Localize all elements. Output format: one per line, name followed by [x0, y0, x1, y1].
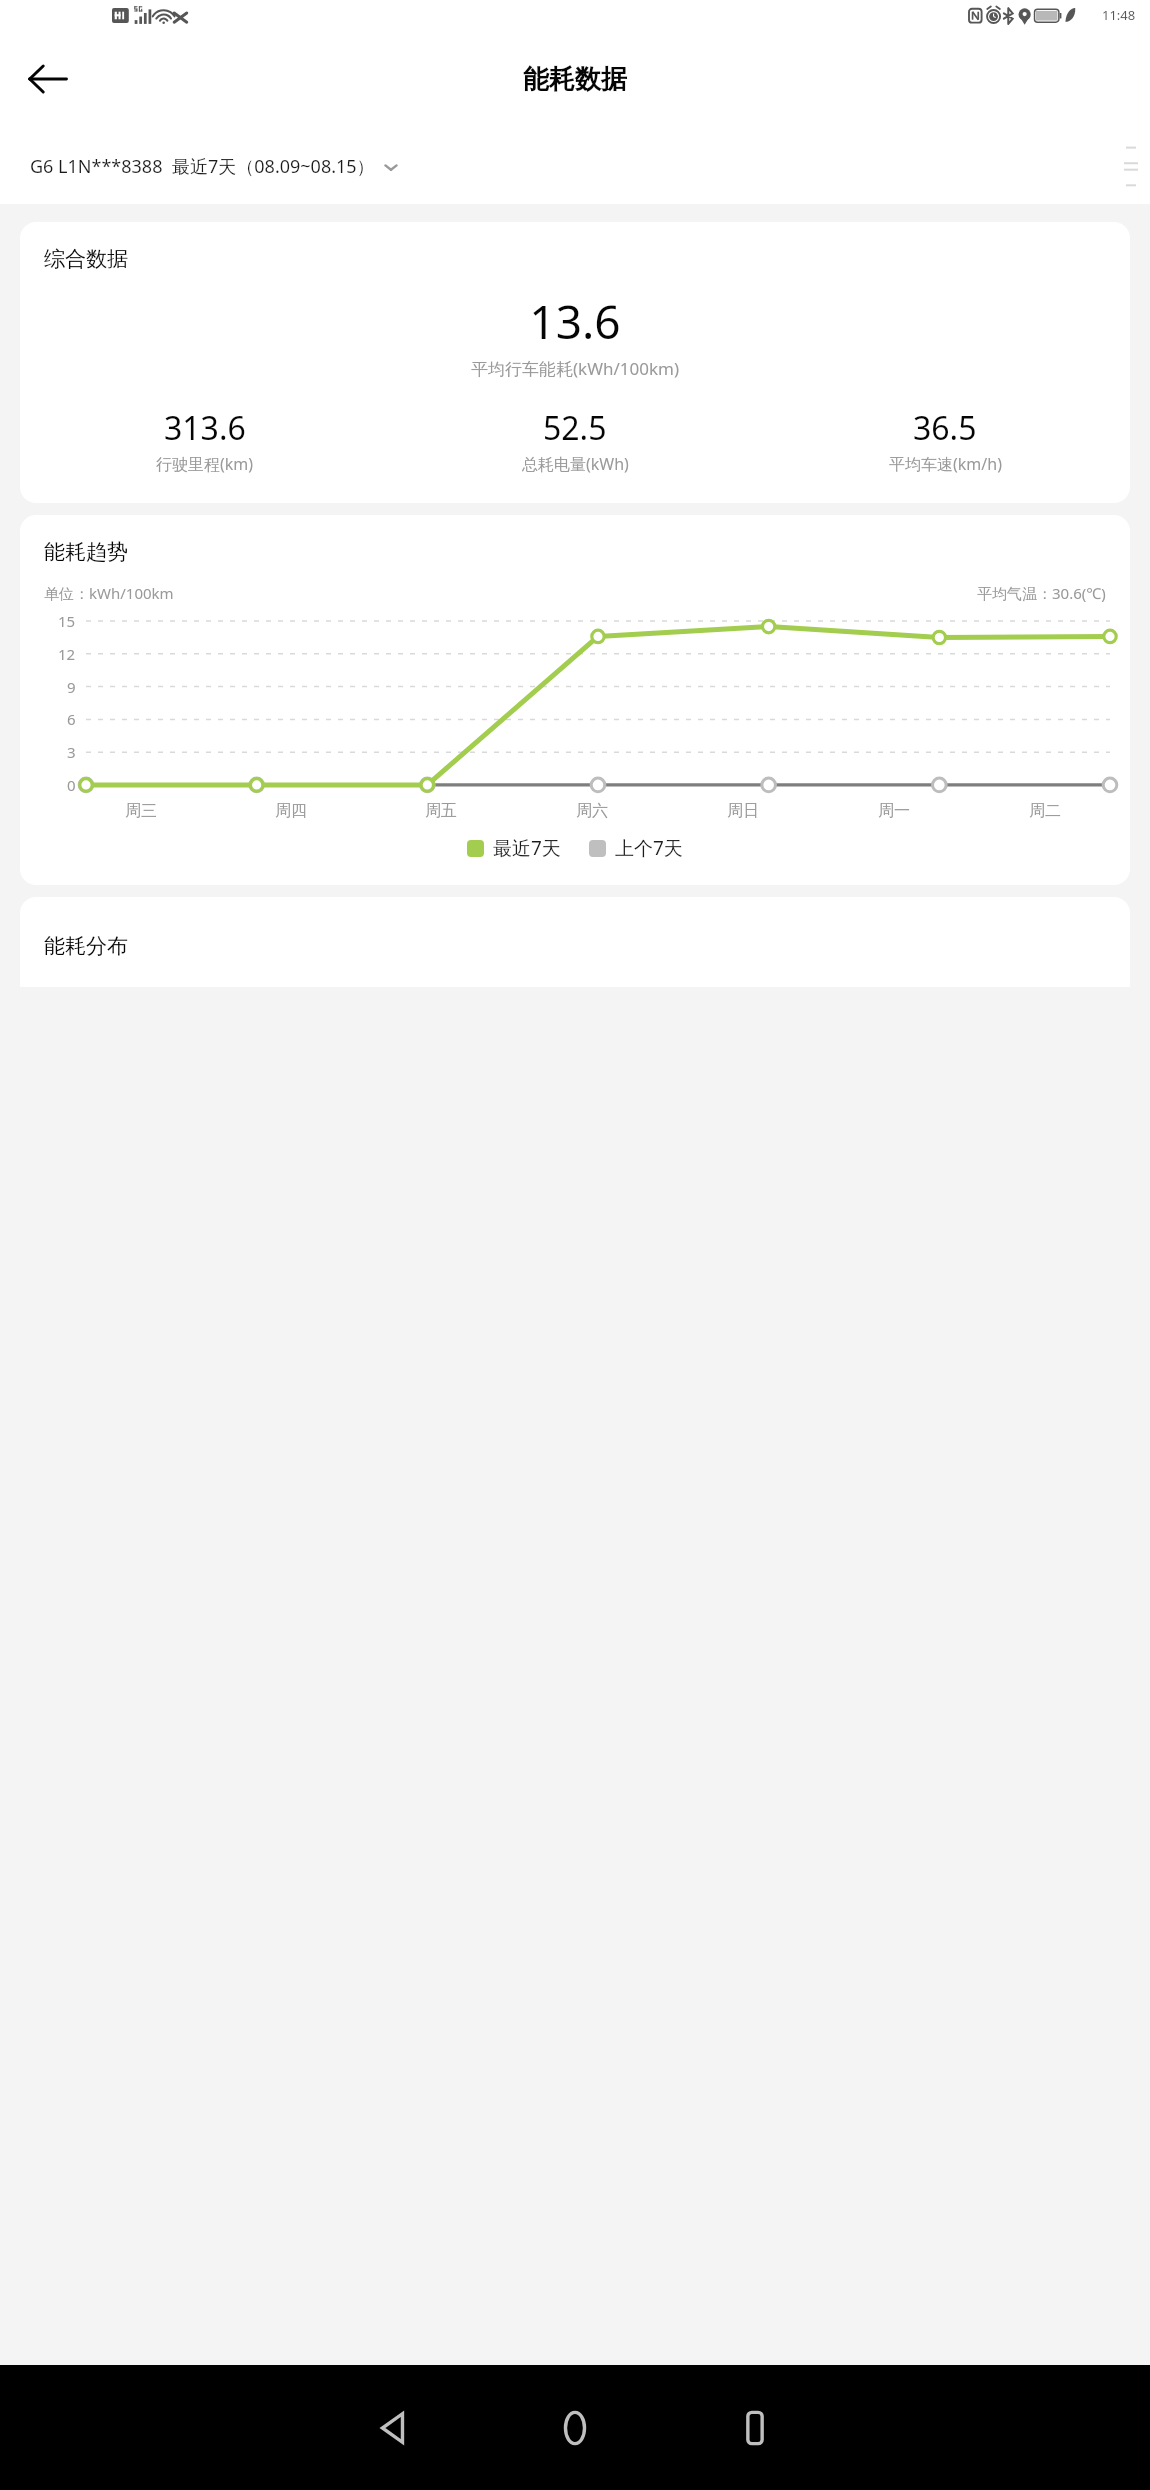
staticText: 11:48 [1102, 6, 1136, 24]
staticText: 9 [67, 677, 76, 697]
button[interactable]: 能耗趋势 [20, 515, 1130, 885]
staticText: 上个7天 [615, 835, 683, 861]
staticText: 能耗数据 [523, 63, 627, 96]
staticText: 15 [58, 611, 76, 631]
staticText: 周日 [727, 801, 759, 821]
staticText: 总耗电量(kWh) [522, 453, 629, 475]
staticText: 0 [67, 775, 76, 795]
staticText: 周五 [425, 801, 457, 821]
staticText: 单位：kWh/100km [44, 583, 174, 603]
staticText: 13.6 [20, 290, 1130, 353]
staticText: G6 L1N***8388 [30, 154, 163, 179]
staticText: 313.6 [164, 406, 246, 450]
staticText: 能耗分布 [44, 933, 128, 959]
staticText: 周四 [275, 801, 307, 821]
button[interactable]: Recent apps [709, 2382, 801, 2474]
button[interactable]: Back [349, 2382, 441, 2474]
staticText: 36.5 [913, 406, 977, 450]
staticText: 最近7天（08.09~08.15） [172, 154, 375, 179]
button[interactable]: 最近7天（08.09~08.15） [172, 154, 401, 179]
staticText: 周二 [1029, 801, 1061, 821]
staticText: 平均车速(km/h) [889, 453, 1002, 475]
staticText: 周六 [576, 801, 608, 821]
staticText: 3 [67, 742, 76, 762]
staticText: 行驶里程(km) [156, 453, 254, 475]
button[interactable]: Back [20, 52, 74, 106]
staticText: 6 [67, 709, 76, 729]
staticText: 综合数据 [44, 246, 128, 272]
staticText: 平均气温：30.6(℃) [977, 583, 1106, 603]
staticText: 12 [58, 644, 76, 664]
staticText: 平均行车能耗(kWh/100km) [20, 357, 1130, 380]
staticText: 周一 [878, 801, 910, 821]
button[interactable]: 综合数据 [20, 222, 1130, 503]
button[interactable]: Home [529, 2382, 621, 2474]
staticText: 52.5 [543, 406, 607, 450]
button[interactable]: 能耗分布 [20, 897, 1130, 987]
staticText: 最近7天 [493, 835, 561, 861]
staticText: 能耗趋势 [44, 539, 128, 565]
staticText: 周三 [125, 801, 157, 821]
